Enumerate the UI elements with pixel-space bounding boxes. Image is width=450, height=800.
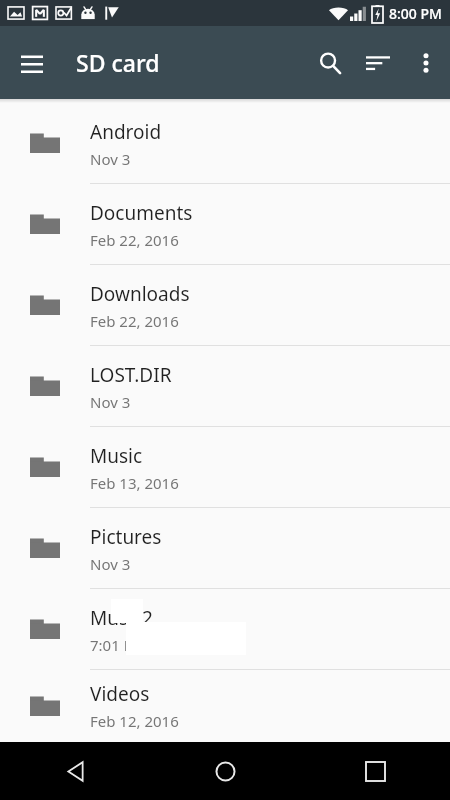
staticText: Music2 <box>90 605 153 631</box>
button[interactable]: Documents <box>0 184 450 265</box>
button[interactable]: LOST.DIR <box>0 346 450 427</box>
button[interactable]: Downloads <box>0 265 450 346</box>
button[interactable]: Music <box>0 427 450 508</box>
staticText: Videos <box>90 681 150 707</box>
button[interactable]: Android <box>0 103 450 184</box>
staticText: SD card <box>76 47 160 78</box>
staticText: Music <box>90 443 143 469</box>
staticText: Nov 3 <box>90 149 131 169</box>
staticText: Feb 13, 2016 <box>90 473 179 493</box>
button[interactable]: Pictures <box>0 508 450 589</box>
staticText: Feb 22, 2016 <box>90 230 179 250</box>
staticText: LOST.DIR <box>90 362 172 388</box>
button[interactable]: Open navigation menu <box>8 39 56 87</box>
button[interactable]: More options <box>402 39 450 87</box>
staticText: Android <box>90 119 162 145</box>
staticText: Downloads <box>90 281 190 307</box>
button[interactable]: Search <box>306 39 354 87</box>
staticText: Nov 3 <box>90 392 131 412</box>
button[interactable]: Sort <box>354 39 402 87</box>
staticText: 8:00 PM <box>389 4 442 23</box>
staticText: 7:01 PM <box>90 635 147 655</box>
staticText: Feb 22, 2016 <box>90 311 179 331</box>
button[interactable]: Back <box>0 742 150 800</box>
staticText: Feb 12, 2016 <box>90 711 179 731</box>
staticText: Nov 3 <box>90 554 131 574</box>
staticText: Documents <box>90 200 193 226</box>
staticText: Pictures <box>90 524 162 550</box>
button[interactable]: Videos <box>0 670 450 742</box>
button[interactable]: Home <box>150 742 300 800</box>
button[interactable]: Music2 <box>0 589 450 670</box>
button[interactable]: Recent apps <box>300 742 450 800</box>
